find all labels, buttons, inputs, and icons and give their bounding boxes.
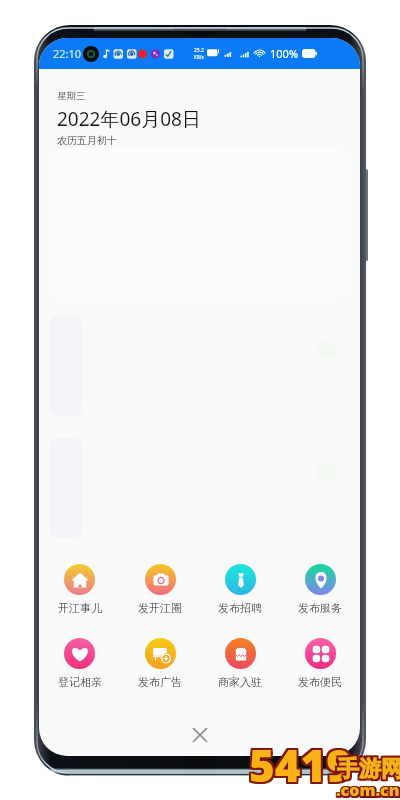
staticText: .com.cn bbox=[336, 779, 400, 800]
staticText: 手游网 bbox=[339, 757, 400, 785]
staticText: .com.cn bbox=[335, 779, 399, 800]
staticText: 手游网 bbox=[335, 757, 400, 785]
staticText: .com.cn bbox=[336, 778, 400, 800]
staticText: 5419 bbox=[247, 735, 351, 795]
button[interactable]: 发开江圈 bbox=[120, 563, 200, 616]
staticText: 5419 bbox=[247, 733, 351, 793]
staticText: 手游网 bbox=[337, 755, 400, 783]
staticText: 手游网 bbox=[335, 753, 400, 781]
button[interactable]: 登记相亲 bbox=[39, 637, 120, 690]
staticText: .com.cn bbox=[338, 779, 400, 800]
button[interactable]: 发布便民 bbox=[280, 637, 360, 690]
button[interactable]: 商家入驻 bbox=[200, 637, 280, 690]
staticText: .com.cn bbox=[336, 781, 400, 800]
staticText: 5419 bbox=[251, 737, 355, 797]
staticText: 手游网 bbox=[337, 757, 400, 785]
staticText: 5419 bbox=[251, 735, 355, 795]
staticText: 发开江圈 bbox=[138, 601, 182, 615]
staticText: 手游网 bbox=[337, 753, 400, 781]
staticText: 手游网 bbox=[339, 753, 400, 781]
staticText: .com.cn bbox=[338, 778, 400, 800]
staticText: 5419 bbox=[247, 737, 351, 797]
staticText: 农历五月初十 bbox=[57, 134, 117, 147]
button[interactable]: 发布招聘 bbox=[200, 563, 280, 616]
staticText: 25.2 bbox=[194, 47, 204, 54]
staticText: 5419 bbox=[249, 735, 353, 795]
staticText: 手游网 bbox=[335, 755, 400, 783]
staticText: 登记相亲 bbox=[58, 675, 102, 689]
staticText: 发布广告 bbox=[138, 675, 182, 689]
button[interactable]: 发布广告 bbox=[120, 637, 200, 690]
button[interactable]: 发布服务 bbox=[280, 563, 360, 616]
staticText: 发布招聘 bbox=[218, 601, 262, 615]
staticText: .com.cn bbox=[335, 781, 399, 800]
staticText: .com.cn bbox=[335, 778, 399, 800]
staticText: 发布便民 bbox=[298, 675, 342, 689]
staticText: 5419 bbox=[249, 737, 353, 797]
staticText: 商家入驻 bbox=[218, 675, 262, 689]
staticText: 星期三 bbox=[57, 90, 86, 102]
staticText: 5419 bbox=[251, 733, 355, 793]
button[interactable]: 开江事儿 bbox=[39, 563, 120, 616]
button[interactable]: Close bbox=[184, 719, 216, 751]
staticText: 发布服务 bbox=[298, 601, 342, 615]
staticText: .com.cn bbox=[338, 781, 400, 800]
staticText: KB/s bbox=[194, 54, 204, 60]
staticText: 手游网 bbox=[339, 755, 400, 783]
staticText: 5419 bbox=[249, 733, 353, 793]
staticText: 2022年06月08日 bbox=[57, 106, 201, 132]
staticText: 100% bbox=[270, 46, 299, 61]
staticText: 开江事儿 bbox=[58, 601, 102, 615]
staticText: 22:10 bbox=[53, 46, 82, 61]
